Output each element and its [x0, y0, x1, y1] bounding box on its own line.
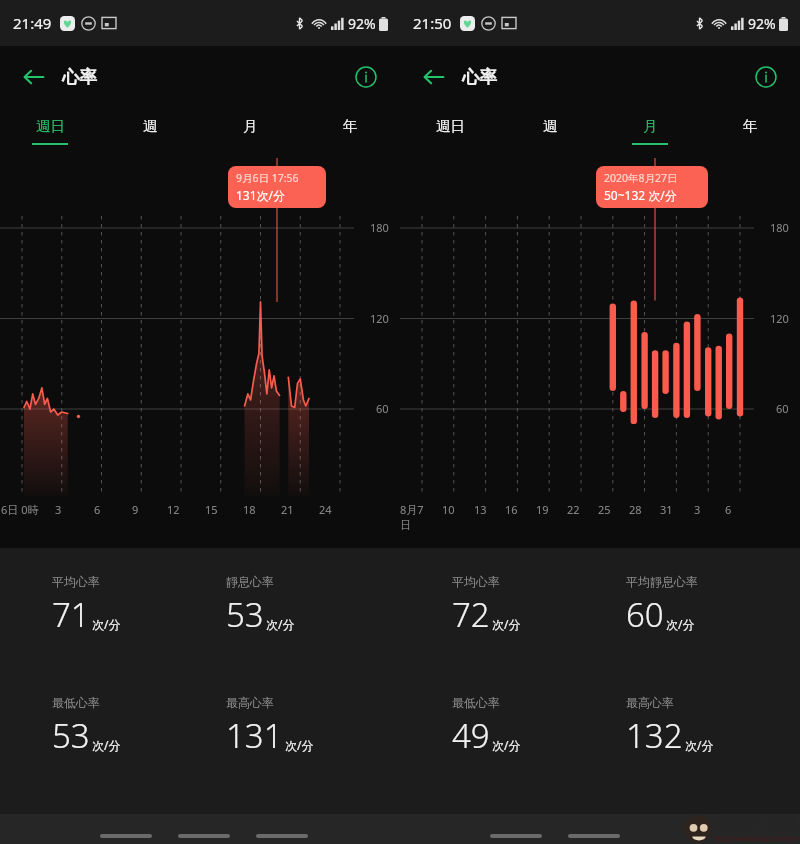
staticText: 180 — [370, 220, 389, 235]
staticText: 53 — [52, 713, 90, 758]
button[interactable]: 月 — [200, 108, 300, 158]
button[interactable]: 2020年8月27日 — [596, 166, 708, 208]
staticText: 72 — [452, 592, 490, 637]
staticText: 92% — [748, 14, 776, 33]
staticText: 50~132 次/分 — [604, 187, 677, 203]
staticText: 8月7日 — [400, 502, 432, 532]
button[interactable]: 平均靜息心率 — [626, 574, 800, 637]
staticText: http://www.kocpc.com.tw — [714, 834, 798, 844]
staticText: 22 — [567, 502, 580, 517]
staticText: 60 — [626, 592, 664, 637]
staticText: 靜息心率 — [226, 574, 274, 589]
staticText: 120 — [370, 311, 389, 326]
staticText: 3 — [694, 502, 701, 517]
button[interactable]: 靜息心率 — [226, 574, 400, 637]
staticText: 次/分 — [92, 737, 121, 753]
button[interactable]: 9月6日 17:56 — [228, 166, 326, 208]
staticText: 月 — [643, 117, 658, 135]
button[interactable]: 週 — [100, 108, 200, 158]
staticText: 心率 — [62, 66, 97, 88]
staticText: 平均靜息心率 — [626, 574, 698, 589]
staticText: 12 — [167, 502, 180, 517]
staticText: 120 — [770, 311, 789, 326]
button[interactable]: Navigation gesture — [178, 834, 230, 838]
button[interactable]: Navigation gesture — [568, 834, 620, 838]
staticText: 次/分 — [666, 616, 695, 632]
button[interactable]: 最低心率 — [52, 695, 226, 758]
staticText: 週日 — [436, 117, 465, 135]
staticText: 21 — [281, 502, 294, 517]
staticText: 10 — [442, 502, 455, 517]
staticText: 60 — [376, 401, 389, 416]
button[interactable]: 月 — [600, 108, 700, 158]
staticText: 次/分 — [492, 616, 521, 632]
staticText: 月 — [243, 117, 258, 135]
button[interactable]: 心率 — [62, 66, 97, 88]
staticText: 18 — [243, 502, 256, 517]
button[interactable]: 週 — [500, 108, 600, 158]
button[interactable]: 最高心率 — [226, 695, 400, 758]
staticText: 16 — [505, 502, 518, 517]
staticText: 最高心率 — [226, 695, 274, 710]
staticText: 次/分 — [685, 737, 714, 753]
staticText: 31 — [660, 502, 673, 517]
staticText: 年 — [743, 117, 758, 135]
button[interactable]: Information — [746, 57, 786, 97]
staticText: 24 — [319, 502, 332, 517]
staticText: 131 — [226, 713, 283, 758]
staticText: 13 — [474, 502, 487, 517]
staticText: 28 — [629, 502, 642, 517]
staticText: 49 — [452, 713, 490, 758]
staticText: 平均心率 — [452, 574, 500, 589]
staticText: 最低心率 — [452, 695, 500, 710]
staticText: 最高心率 — [626, 695, 674, 710]
button[interactable]: 最低心率 — [452, 695, 626, 758]
staticText: 92% — [348, 14, 376, 33]
button[interactable]: 週日 — [0, 108, 100, 158]
staticText: 3 — [55, 502, 62, 517]
button[interactable]: 最高心率 — [626, 695, 800, 758]
button[interactable]: Back — [414, 57, 454, 97]
staticText: 平均心率 — [52, 574, 100, 589]
staticText: 21:50 — [413, 13, 452, 33]
staticText: 6 — [725, 502, 732, 517]
staticText: 53 — [226, 592, 264, 637]
staticText: 132 — [626, 713, 683, 758]
staticText: 次/分 — [92, 616, 121, 632]
button[interactable]: 心率 — [462, 66, 497, 88]
staticText: 131次/分 — [236, 187, 286, 203]
staticText: 9月6日 17:56 — [236, 171, 299, 185]
staticText: 15 — [205, 502, 218, 517]
button[interactable]: Back — [14, 57, 54, 97]
staticText: 60 — [776, 401, 789, 416]
staticText: 71 — [52, 592, 90, 637]
staticText: 6日 0時 — [1, 502, 39, 517]
button[interactable]: 年 — [300, 108, 400, 158]
button[interactable]: 平均心率 — [452, 574, 626, 637]
staticText: 次/分 — [285, 737, 314, 753]
staticText: 次/分 — [266, 616, 295, 632]
staticText: 週 — [543, 117, 558, 135]
button[interactable]: Information — [346, 57, 386, 97]
button[interactable]: 年 — [700, 108, 800, 158]
staticText: 週日 — [36, 117, 65, 135]
staticText: 9 — [132, 502, 139, 517]
staticText: 25 — [598, 502, 611, 517]
staticText: 年 — [343, 117, 358, 135]
staticText: 6 — [94, 502, 101, 517]
staticText: 21:49 — [13, 13, 52, 33]
staticText: 2020年8月27日 — [604, 171, 678, 185]
staticText: 19 — [536, 502, 549, 517]
button[interactable]: 週日 — [400, 108, 500, 158]
button[interactable]: Navigation gesture — [256, 834, 308, 838]
staticText: 180 — [770, 220, 789, 235]
staticText: 次/分 — [492, 737, 521, 753]
button[interactable]: Navigation gesture — [490, 834, 542, 838]
staticText: 最低心率 — [52, 695, 100, 710]
button[interactable]: Navigation gesture — [100, 834, 152, 838]
staticText: 心率 — [462, 66, 497, 88]
button[interactable]: 平均心率 — [52, 574, 226, 637]
staticText: 週 — [143, 117, 158, 135]
